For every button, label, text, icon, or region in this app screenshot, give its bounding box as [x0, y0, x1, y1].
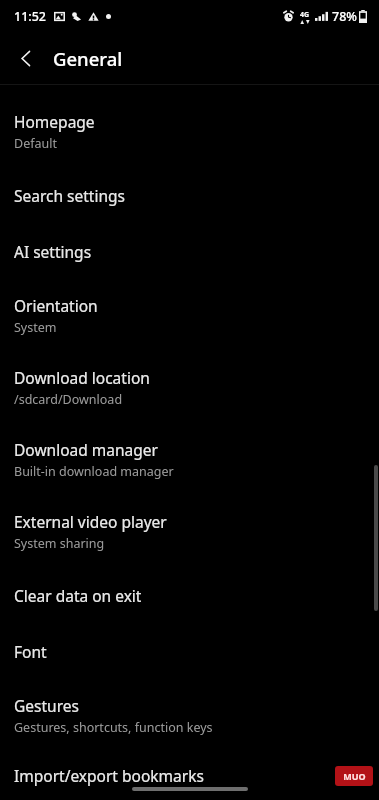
staticText: Default: [14, 135, 57, 152]
staticText: Orientation: [14, 295, 98, 316]
staticText: Homepage: [14, 111, 95, 132]
staticText: External video player: [14, 511, 167, 532]
staticText: AI settings: [14, 241, 92, 262]
staticText: System: [14, 319, 57, 336]
button[interactable]: Homepage: [0, 95, 379, 167]
button[interactable]: Search settings: [0, 167, 379, 223]
staticText: Font: [14, 641, 47, 662]
staticText: Search settings: [14, 185, 125, 206]
staticText: 78%: [332, 8, 357, 25]
staticText: Gestures: [14, 695, 79, 716]
button[interactable]: Back: [6, 38, 46, 78]
staticText: /sdcard/Download: [14, 391, 123, 408]
button[interactable]: Download location: [0, 351, 379, 423]
staticText: Clear data on exit: [14, 585, 142, 606]
staticText: Download manager: [14, 439, 158, 460]
staticText: System sharing: [14, 535, 105, 552]
staticText: Import/export bookmarks: [14, 765, 204, 786]
staticText: 11:52: [14, 8, 47, 25]
button[interactable]: Import/export bookmarks: [0, 751, 379, 800]
staticText: General: [53, 46, 123, 71]
staticText: MUO: [343, 770, 366, 782]
button[interactable]: Download manager: [0, 423, 379, 495]
button[interactable]: External video player: [0, 495, 379, 567]
staticText: 4G: [300, 10, 310, 20]
staticText: Built-in download manager: [14, 463, 174, 480]
button[interactable]: Clear data on exit: [0, 567, 379, 623]
button[interactable]: Font: [0, 623, 379, 679]
staticText: Download location: [14, 367, 150, 388]
button[interactable]: Gestures: [0, 679, 379, 751]
staticText: Gestures, shortcuts, function keys: [14, 719, 213, 736]
button[interactable]: Orientation: [0, 279, 379, 351]
button[interactable]: AI settings: [0, 223, 379, 279]
